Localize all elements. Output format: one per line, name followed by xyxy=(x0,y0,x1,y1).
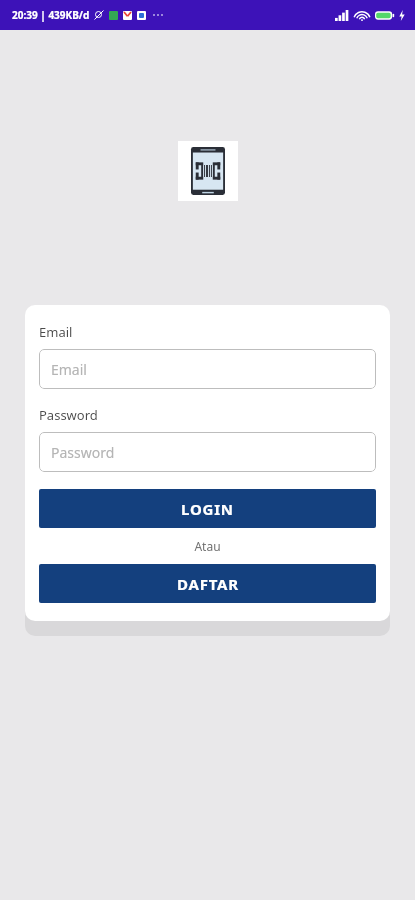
button[interactable]: DAFTAR xyxy=(39,564,376,603)
staticText: Password xyxy=(51,443,115,462)
button[interactable]: LOGIN xyxy=(39,489,376,528)
staticText: Email xyxy=(39,323,73,341)
staticText: DAFTAR xyxy=(177,574,239,594)
staticText: Email xyxy=(51,360,87,379)
staticText: Atau xyxy=(194,538,221,554)
staticText: LOGIN xyxy=(181,499,234,519)
staticText: Password xyxy=(39,406,98,424)
button[interactable]: Password xyxy=(39,432,376,472)
staticText: 20:39 | 439KB/d xyxy=(12,8,90,22)
button[interactable]: Email xyxy=(39,349,376,389)
